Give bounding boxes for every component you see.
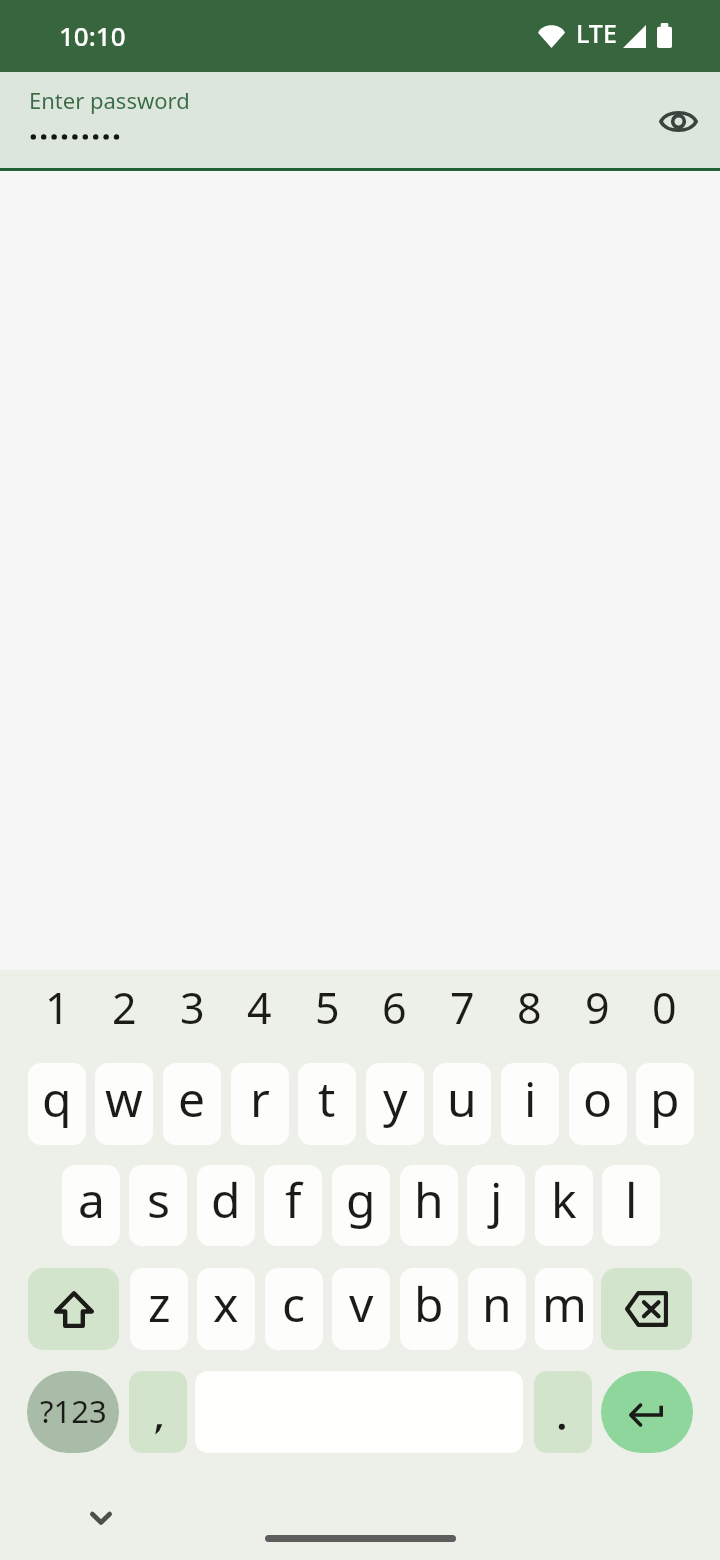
button[interactable]: [129, 1371, 187, 1453]
button[interactable]: c: [265, 1268, 323, 1350]
button[interactable]: [534, 1371, 592, 1453]
button[interactable]: Show password: [650, 92, 706, 148]
button[interactable]: p: [636, 1063, 694, 1145]
staticText: LTE: [576, 16, 617, 50]
staticText: u: [447, 1066, 477, 1131]
staticText: x: [213, 1271, 239, 1336]
staticText: 7: [450, 978, 475, 1037]
staticText: Enter password: [29, 85, 190, 115]
button[interactable]: i: [501, 1063, 559, 1145]
staticText: 3: [180, 978, 205, 1037]
button[interactable]: x: [197, 1268, 255, 1350]
staticText: 2: [112, 978, 137, 1037]
staticText: z: [148, 1271, 171, 1336]
staticText: ?123: [40, 1390, 107, 1432]
button[interactable]: m: [535, 1268, 593, 1350]
staticText: p: [650, 1066, 680, 1131]
staticText: m: [542, 1271, 587, 1336]
button[interactable]: b: [400, 1268, 458, 1350]
button[interactable]: o: [569, 1063, 627, 1145]
staticText: k: [551, 1167, 577, 1232]
button[interactable]: e: [163, 1063, 221, 1145]
staticText: r: [250, 1066, 270, 1131]
staticText: h: [414, 1167, 444, 1232]
button[interactable]: j: [467, 1165, 525, 1246]
button[interactable]: t: [298, 1063, 356, 1145]
button[interactable]: n: [468, 1268, 526, 1350]
button[interactable]: w: [95, 1063, 153, 1145]
staticText: w: [105, 1066, 143, 1131]
button[interactable]: 6: [360, 970, 428, 1052]
button[interactable]: Shift: [28, 1268, 119, 1350]
staticText: q: [42, 1066, 72, 1131]
button[interactable]: 2: [90, 970, 158, 1052]
button[interactable]: l: [602, 1165, 660, 1246]
staticText: b: [414, 1271, 444, 1336]
staticText: v: [349, 1271, 374, 1336]
staticText: l: [625, 1167, 638, 1232]
button[interactable]: 0: [630, 970, 698, 1052]
button[interactable]: d: [197, 1165, 255, 1246]
button[interactable]: q: [28, 1063, 86, 1145]
button[interactable]: a: [62, 1165, 120, 1246]
staticText: g: [346, 1167, 376, 1232]
staticText: o: [583, 1066, 613, 1131]
staticText: s: [147, 1167, 170, 1232]
button[interactable]: y: [366, 1063, 424, 1145]
staticText: t: [318, 1066, 336, 1131]
button[interactable]: r: [231, 1063, 289, 1145]
staticText: f: [285, 1167, 302, 1232]
staticText: e: [178, 1066, 206, 1131]
button[interactable]: g: [332, 1165, 390, 1246]
button[interactable]: h: [400, 1165, 458, 1246]
staticText: 1: [45, 978, 70, 1037]
button[interactable]: u: [433, 1063, 491, 1145]
button[interactable]: v: [332, 1268, 390, 1350]
button[interactable]: k: [535, 1165, 593, 1246]
staticText: 8: [517, 978, 542, 1037]
button[interactable]: 8: [495, 970, 563, 1052]
button[interactable]: 3: [158, 970, 226, 1052]
staticText: i: [524, 1066, 537, 1131]
staticText: 5: [315, 978, 340, 1037]
staticText: 10:10: [59, 18, 126, 53]
staticText: y: [383, 1066, 408, 1131]
staticText: 0: [652, 978, 677, 1037]
staticText: 9: [585, 978, 610, 1037]
button[interactable]: z: [130, 1268, 188, 1350]
button[interactable]: Hide keyboard: [73, 1490, 129, 1546]
staticText: n: [482, 1271, 512, 1336]
button[interactable]: 9: [563, 970, 631, 1052]
staticText: j: [490, 1167, 503, 1232]
staticText: c: [282, 1271, 306, 1336]
button[interactable]: 4: [225, 970, 293, 1052]
button[interactable]: 7: [428, 970, 496, 1052]
button[interactable]: Enter password: [0, 72, 720, 168]
staticText: d: [211, 1167, 241, 1232]
button[interactable]: Backspace: [601, 1268, 692, 1350]
button[interactable]: 5: [293, 970, 361, 1052]
staticText: 6: [382, 978, 407, 1037]
staticText: 4: [247, 978, 272, 1037]
button[interactable]: f: [264, 1165, 322, 1246]
button[interactable]: 1: [23, 970, 91, 1052]
staticText: a: [78, 1167, 105, 1232]
button[interactable]: ?123: [27, 1371, 119, 1453]
button[interactable]: Enter: [601, 1371, 693, 1453]
button[interactable]: s: [129, 1165, 187, 1246]
